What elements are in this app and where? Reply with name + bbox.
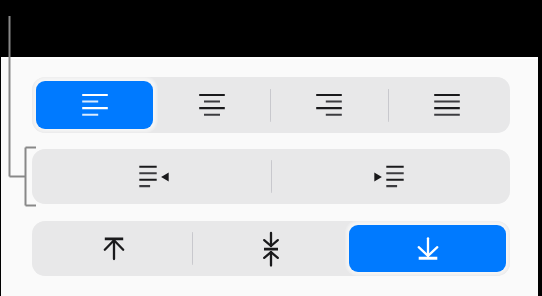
button[interactable]: Align top — [36, 225, 192, 272]
button[interactable]: Justify — [388, 81, 506, 129]
button[interactable]: Align middle — [192, 225, 349, 272]
button[interactable]: Align center — [153, 81, 270, 129]
button[interactable]: Decrease indent — [36, 153, 271, 200]
button[interactable]: Align bottom — [349, 225, 506, 272]
button[interactable]: Increase indent — [271, 153, 506, 200]
button[interactable]: Align left — [36, 81, 153, 129]
button[interactable]: Align right — [270, 81, 388, 129]
